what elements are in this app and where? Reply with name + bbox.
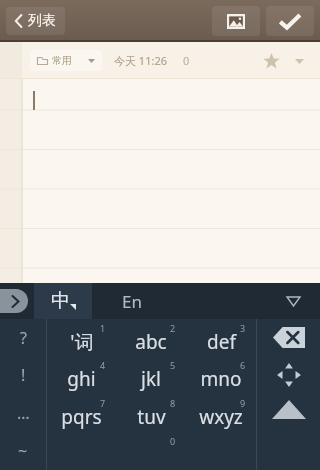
staticText: 列表 bbox=[28, 12, 56, 30]
button[interactable]: 1 bbox=[47, 319, 116, 356]
staticText: ! bbox=[21, 364, 26, 386]
staticText: 今天 11:26 bbox=[114, 53, 167, 68]
staticText: 3 bbox=[240, 322, 246, 334]
button[interactable]: En bbox=[92, 283, 172, 319]
button[interactable]: 7 bbox=[47, 394, 116, 432]
staticText: jkl bbox=[141, 366, 161, 392]
button[interactable]: 中 bbox=[34, 283, 92, 319]
staticText: abc bbox=[135, 329, 167, 355]
staticText: … bbox=[17, 402, 30, 424]
button[interactable]: ? bbox=[0, 319, 46, 356]
button[interactable]: Favorite bbox=[256, 46, 286, 76]
button[interactable]: Expand keyboard bbox=[0, 289, 28, 313]
staticText: wxyz bbox=[199, 404, 243, 430]
button[interactable]: Hide keyboard bbox=[280, 288, 306, 314]
staticText: 0 bbox=[183, 53, 190, 68]
staticText: En bbox=[122, 290, 142, 313]
button[interactable]: 列表 bbox=[6, 7, 65, 35]
staticText: 6 bbox=[240, 359, 246, 371]
staticText: 4 bbox=[100, 359, 106, 371]
button[interactable]: 5 bbox=[116, 356, 186, 394]
staticText: def bbox=[207, 329, 236, 355]
button[interactable]: Shift bbox=[257, 394, 320, 470]
staticText: 0 bbox=[170, 435, 176, 447]
button[interactable]: Done bbox=[266, 6, 314, 36]
button[interactable]: 2 bbox=[116, 319, 186, 356]
button[interactable]: 0 bbox=[116, 432, 186, 470]
button[interactable]: 4 bbox=[47, 356, 116, 394]
button[interactable]: Move cursor bbox=[257, 356, 320, 394]
button[interactable]: ! bbox=[0, 356, 46, 394]
staticText: ? bbox=[20, 327, 27, 349]
button[interactable]: 9 bbox=[186, 394, 256, 432]
button[interactable]: 常用 bbox=[30, 50, 102, 71]
staticText: 8 bbox=[170, 397, 176, 409]
button[interactable]: 8 bbox=[116, 394, 186, 432]
staticText: pqrs bbox=[61, 404, 102, 430]
button[interactable]: … bbox=[0, 394, 46, 432]
button[interactable]: 3 bbox=[186, 319, 256, 356]
button[interactable]: 6 bbox=[186, 356, 256, 394]
staticText: '词 bbox=[70, 329, 94, 355]
button[interactable]: Insert picture bbox=[212, 6, 260, 36]
staticText: 中 bbox=[51, 289, 70, 313]
staticText: ghi bbox=[67, 366, 96, 392]
staticText: 7 bbox=[100, 397, 106, 409]
staticText: 1 bbox=[100, 322, 106, 334]
staticText: 5 bbox=[170, 359, 176, 371]
button[interactable]: Backspace bbox=[257, 319, 320, 356]
staticText: 2 bbox=[170, 322, 176, 334]
staticText: mno bbox=[200, 366, 242, 392]
button[interactable]: ~ bbox=[0, 432, 46, 470]
staticText: tuv bbox=[137, 404, 166, 430]
staticText: ~ bbox=[18, 440, 28, 462]
staticText: 常用 bbox=[52, 54, 72, 67]
staticText: 9 bbox=[240, 397, 246, 409]
button[interactable]: More options bbox=[286, 48, 312, 74]
